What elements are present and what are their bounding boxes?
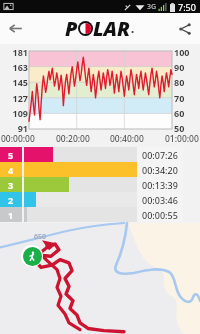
staticText: LAR [93,15,131,42]
button[interactable]: 2 [0,192,200,207]
staticText: 00:34:20 [142,164,178,176]
button[interactable]: 650 [0,223,200,334]
staticText: 91 [2,122,28,134]
staticText: 7:50 [178,1,196,13]
staticText: 100 [174,46,198,58]
staticText: 4 [8,164,14,176]
button[interactable]: 1 [0,207,200,222]
staticText: 00:07:26 [142,149,178,161]
staticText: 109 [2,107,28,119]
staticText: . [131,21,135,36]
staticText: 00:00:00 [1,133,35,145]
staticText: 163 [2,61,28,73]
button[interactable]: 3 [0,177,200,192]
staticText: 00:03:46 [142,194,178,206]
button[interactable]: 4 [0,162,200,177]
staticText: 90 [174,61,198,73]
button[interactable]: Start location [21,245,43,267]
staticText: 5 [8,149,14,161]
staticText: 1 [8,209,14,221]
staticText: 2 [8,194,14,206]
button[interactable]: Back [0,13,31,44]
staticText: P [65,15,78,42]
button[interactable]: 5 [0,147,200,162]
staticText: 3 [8,179,14,191]
staticText: 00:13:39 [142,179,178,191]
staticText: 181 [2,46,28,58]
staticText: 00:20:00 [56,133,90,145]
staticText: 00:00:55 [142,209,178,221]
staticText: 60 [174,107,198,119]
staticText: 145 [2,76,28,88]
staticText: 01:00:00 [165,133,199,145]
staticText: 80 [174,76,198,88]
button[interactable]: Share [169,13,200,44]
staticText: 50 [174,122,198,134]
staticText: 00:40:00 [110,133,144,145]
staticText: 70 [174,92,198,104]
staticText: 650 [34,232,47,242]
staticText: 3G [147,2,157,12]
staticText: 127 [2,92,28,104]
